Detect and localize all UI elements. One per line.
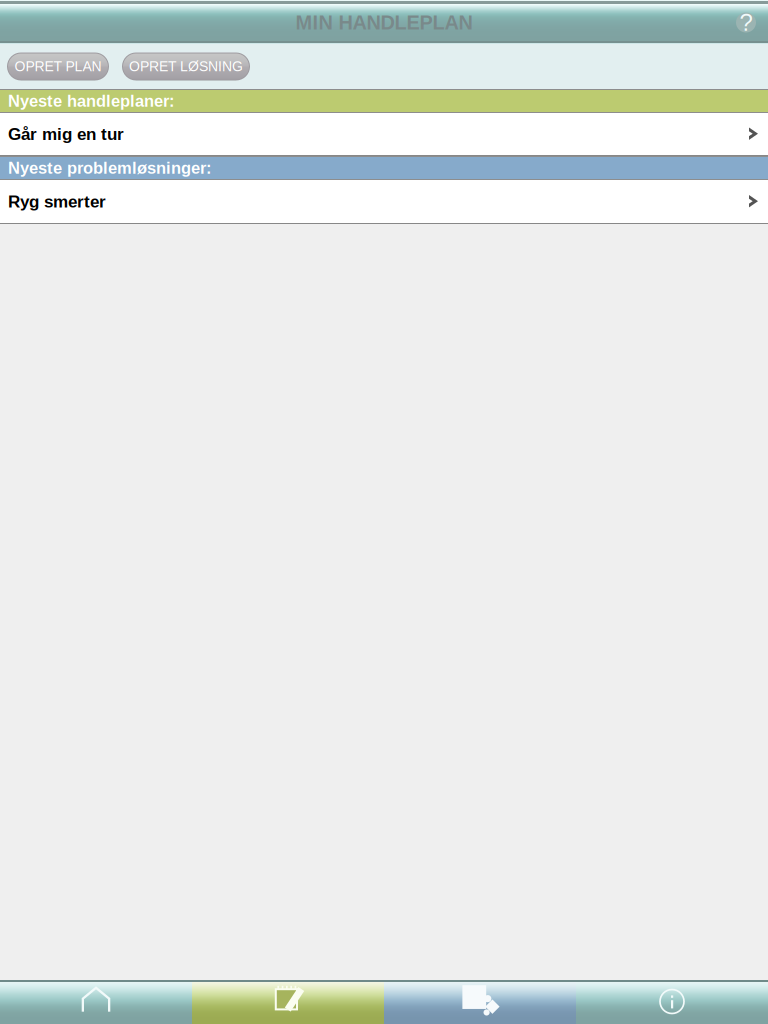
button[interactable]: Home — [0, 980, 192, 1024]
button[interactable]: OPRET PLAN — [7, 52, 109, 80]
staticText: Nyeste handleplaner: — [8, 92, 175, 110]
staticText: Nyeste problemløsninger: — [8, 159, 212, 177]
button[interactable]: OPRET LØSNING — [122, 52, 250, 80]
button[interactable]: Info — [576, 980, 768, 1024]
button[interactable]: Help — [729, 5, 763, 39]
button[interactable]: Ryg smerter — [0, 180, 768, 224]
staticText: Ryg smerter — [8, 192, 106, 211]
staticText: OPRET PLAN — [14, 59, 101, 74]
button[interactable]: Plans — [192, 980, 384, 1024]
button[interactable]: Problems — [384, 980, 576, 1024]
staticText: OPRET LØSNING — [129, 59, 243, 74]
button[interactable]: Går mig en tur — [0, 113, 768, 156]
staticText: MIN HANDLEPLAN — [295, 11, 472, 34]
staticText: ? — [739, 9, 752, 36]
staticText: Går mig en tur — [8, 124, 124, 144]
